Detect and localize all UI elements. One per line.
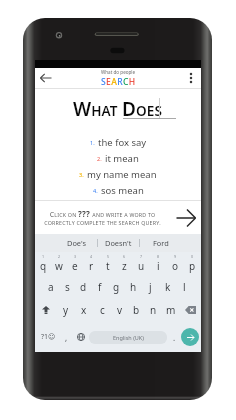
staticText: 3. xyxy=(79,171,84,178)
staticText: m xyxy=(166,303,176,317)
staticText: h xyxy=(130,280,137,294)
button[interactable]: d xyxy=(75,275,91,298)
button[interactable]: Back xyxy=(38,70,54,86)
staticText: y xyxy=(63,303,69,317)
staticText: r xyxy=(89,259,94,273)
staticText: Doesn't xyxy=(105,238,132,248)
staticText: my name mean xyxy=(87,168,157,181)
button[interactable]: 9 xyxy=(167,252,184,275)
button[interactable]: 4 xyxy=(83,252,99,275)
button[interactable]: 2 xyxy=(51,252,67,275)
button[interactable]: , xyxy=(59,324,73,350)
staticText: o xyxy=(172,259,179,273)
staticText: 2 xyxy=(58,254,61,259)
staticText: u xyxy=(138,259,145,273)
staticText: . xyxy=(173,332,176,343)
staticText: Doe's xyxy=(67,238,86,248)
button[interactable]: 5 xyxy=(99,252,116,275)
button[interactable]: v xyxy=(111,298,128,322)
button[interactable]: 7 xyxy=(133,252,150,275)
staticText: w xyxy=(55,259,63,273)
button[interactable]: English (UK) xyxy=(89,331,167,344)
button[interactable]: 8 xyxy=(150,252,167,275)
staticText: a xyxy=(48,280,54,294)
button[interactable]: b xyxy=(128,298,145,322)
staticText: s xyxy=(65,280,70,294)
staticText: i xyxy=(157,259,160,273)
staticText: 4. xyxy=(93,187,98,194)
button[interactable]: f xyxy=(91,275,108,298)
button[interactable]: k xyxy=(159,275,176,298)
staticText: 7 xyxy=(140,254,143,259)
button[interactable]: x xyxy=(75,298,93,322)
staticText: 5 xyxy=(107,254,110,259)
button[interactable]: Enter xyxy=(181,328,199,346)
button[interactable]: Change language xyxy=(73,324,89,350)
staticText: n xyxy=(150,303,157,317)
staticText: x xyxy=(81,303,87,317)
staticText: l xyxy=(183,280,186,294)
staticText: , xyxy=(65,332,68,343)
button[interactable]: ?1☺ xyxy=(37,324,59,350)
button[interactable]: c xyxy=(93,298,111,322)
button[interactable]: 6 xyxy=(116,252,133,275)
staticText: English (UK) xyxy=(113,334,144,341)
button[interactable]: 3 xyxy=(67,252,83,275)
button[interactable]: More options xyxy=(184,71,198,85)
button[interactable]: h xyxy=(125,275,142,298)
staticText: 6 xyxy=(123,254,126,259)
staticText: sos mean xyxy=(101,184,144,197)
button[interactable]: Ford xyxy=(140,234,181,252)
staticText: c xyxy=(100,303,105,317)
staticText: What do people xyxy=(101,69,136,75)
staticText: 4 xyxy=(90,254,93,259)
button[interactable]: y xyxy=(57,298,75,322)
staticText: ?1☺ xyxy=(41,332,56,342)
staticText: f xyxy=(98,280,102,294)
staticText: SEARCH xyxy=(101,76,136,88)
staticText: j xyxy=(149,280,152,294)
button[interactable]: . xyxy=(167,324,181,350)
button[interactable]: n xyxy=(145,298,162,322)
staticText: CLICK ON ??? AND WRITE A WORD TO CORRECT… xyxy=(40,208,165,227)
button[interactable]: l xyxy=(176,275,193,298)
staticText: t xyxy=(106,259,110,273)
staticText: it mean xyxy=(105,152,139,165)
button[interactable]: 1 xyxy=(35,252,51,275)
button[interactable]: 3. xyxy=(35,166,201,182)
staticText: e xyxy=(72,259,78,273)
staticText: 1. xyxy=(90,139,95,146)
button[interactable]: 4. xyxy=(35,182,201,198)
staticText: k xyxy=(165,280,171,294)
staticText: g xyxy=(113,280,120,294)
staticText: 0 xyxy=(191,254,194,259)
staticText: Ford xyxy=(153,238,169,248)
button[interactable]: Next xyxy=(176,209,196,227)
staticText: DOES xyxy=(122,96,163,122)
button[interactable]: s xyxy=(59,275,75,298)
staticText: q xyxy=(40,259,47,273)
staticText: z xyxy=(122,259,127,273)
staticText: v xyxy=(117,303,123,317)
staticText: WHAT xyxy=(73,96,118,122)
button[interactable]: g xyxy=(108,275,125,298)
staticText: 2. xyxy=(97,155,102,162)
staticText: 8 xyxy=(157,254,160,259)
staticText: 9 xyxy=(174,254,177,259)
button[interactable]: 0 xyxy=(184,252,201,275)
staticText: 3 xyxy=(74,254,77,259)
staticText: the fox say xyxy=(98,136,147,149)
button[interactable]: Shift xyxy=(35,298,57,322)
button[interactable]: Doe's xyxy=(55,234,97,252)
staticText: 1 xyxy=(42,254,45,259)
button[interactable]: 1. xyxy=(35,134,201,150)
button[interactable]: a xyxy=(43,275,59,298)
button[interactable]: Backspace xyxy=(179,298,201,322)
button[interactable]: j xyxy=(142,275,159,298)
button[interactable]: m xyxy=(162,298,179,322)
staticText: b xyxy=(133,303,140,317)
button[interactable]: 2. xyxy=(35,150,201,166)
staticText: d xyxy=(80,280,87,294)
staticText: p xyxy=(189,259,196,273)
button[interactable]: Doesn't xyxy=(98,234,139,252)
